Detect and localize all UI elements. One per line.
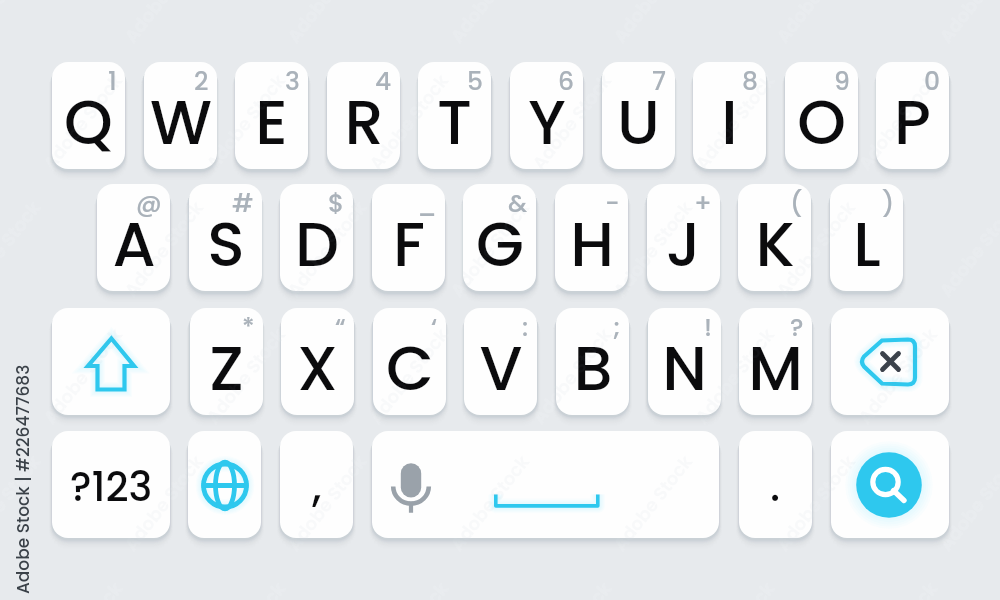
staticText: Adobe Stock — [689, 323, 780, 429]
button[interactable]: D — [280, 184, 353, 291]
button[interactable]: Comma — [280, 431, 353, 538]
staticText: Adobe Stock — [526, 323, 617, 429]
button[interactable]: A — [97, 184, 170, 291]
button[interactable]: Search — [831, 431, 949, 538]
button[interactable]: M — [739, 308, 812, 415]
staticText: Adobe Stock — [281, 196, 372, 302]
button[interactable]: Y — [510, 62, 583, 169]
button[interactable]: K — [738, 184, 811, 291]
staticText: 9 — [834, 64, 850, 99]
staticText: _ — [417, 186, 437, 221]
staticText: ?123 — [70, 459, 153, 515]
staticText: @ — [136, 186, 162, 221]
staticText: Adobe Stock — [37, 69, 128, 175]
staticText: Adobe Stock — [0, 450, 46, 556]
staticText: I — [721, 79, 738, 166]
button[interactable]: O — [785, 62, 858, 169]
button[interactable]: C — [373, 308, 446, 415]
staticText: 6 — [558, 64, 575, 99]
button[interactable]: R — [327, 62, 400, 169]
staticText: Y — [528, 79, 566, 166]
staticText: L — [853, 201, 881, 288]
staticText: Adobe Stock — [363, 69, 454, 175]
staticText: Adobe Stock — [444, 450, 535, 556]
staticText: D — [295, 201, 339, 288]
button[interactable]: X — [281, 308, 354, 415]
staticText: Adobe Stock — [37, 69, 128, 175]
staticText: Adobe Stock — [281, 450, 372, 556]
staticText: Adobe Stock — [118, 450, 209, 556]
staticText: 0 — [924, 64, 941, 99]
button[interactable]: L — [830, 184, 903, 291]
button[interactable]: Period — [739, 431, 812, 538]
staticText: ? — [790, 310, 804, 345]
staticText: G — [476, 201, 524, 288]
staticText: Adobe Stock — [933, 450, 1000, 556]
button[interactable]: G — [463, 184, 536, 291]
button[interactable]: Backspace — [831, 308, 949, 415]
button[interactable]: Z — [190, 308, 263, 415]
staticText: Adobe Stock — [770, 196, 861, 302]
staticText: Adobe Stock — [607, 196, 698, 302]
staticText: 8 — [742, 64, 758, 99]
staticText: C — [386, 325, 434, 412]
button[interactable]: J — [647, 184, 720, 291]
staticText: Adobe Stock — [689, 69, 780, 175]
staticText: Adobe Stock — [281, 450, 372, 556]
staticText: * — [242, 310, 255, 345]
staticText: J — [666, 201, 701, 288]
button[interactable]: H — [555, 184, 628, 291]
staticText: Q — [64, 79, 113, 166]
button[interactable]: E — [235, 62, 308, 169]
staticText: Adobe Stock — [363, 323, 454, 429]
staticText: 7 — [652, 64, 667, 99]
staticText: Adobe Stock — [852, 69, 943, 175]
button[interactable]: T — [418, 62, 491, 169]
staticText: M — [748, 325, 803, 412]
staticText: Adobe Stock | #226477683 — [11, 364, 35, 594]
staticText: Adobe Stock — [770, 450, 861, 556]
button[interactable]: P — [876, 62, 949, 169]
staticText: # — [232, 186, 254, 221]
staticText: ) — [882, 186, 895, 221]
button[interactable]: B — [556, 308, 629, 415]
button[interactable]: Q — [52, 62, 125, 169]
button[interactable]: U — [602, 62, 675, 169]
button[interactable]: F — [372, 184, 445, 291]
staticText: & — [508, 186, 528, 221]
button[interactable]: Space — [372, 431, 719, 538]
button[interactable]: Change language — [188, 431, 261, 538]
staticText: A — [112, 201, 156, 288]
staticText: Adobe Stock — [118, 196, 209, 302]
button[interactable]: Symbols — [52, 431, 170, 538]
button[interactable]: S — [189, 184, 262, 291]
staticText: Adobe Stock — [770, 450, 861, 556]
staticText: Adobe Stock — [281, 196, 372, 302]
button[interactable]: V — [464, 308, 537, 415]
button[interactable]: W — [144, 62, 217, 169]
button[interactable]: I — [693, 62, 766, 169]
staticText: Adobe Stock — [444, 450, 535, 556]
staticText: X — [297, 325, 338, 412]
staticText: - — [605, 186, 620, 221]
button[interactable]: Shift — [52, 308, 170, 415]
staticText: + — [694, 186, 712, 221]
staticText: Adobe Stock — [607, 196, 698, 302]
button[interactable]: N — [648, 308, 721, 415]
staticText: Adobe Stock — [852, 323, 943, 429]
staticText: Adobe Stock — [363, 323, 454, 429]
staticText: Adobe Stock — [0, 450, 46, 556]
